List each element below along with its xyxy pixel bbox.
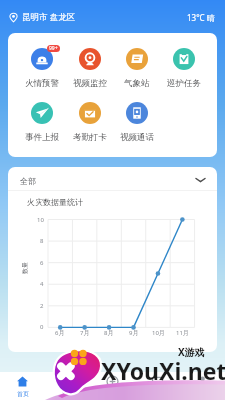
staticText: 9月 bbox=[129, 329, 139, 337]
staticText: 11月 bbox=[176, 329, 189, 337]
button[interactable]: 首页 bbox=[0, 372, 45, 400]
staticText: 考勤打卡 bbox=[73, 132, 107, 143]
other: Location bbox=[9, 13, 18, 22]
staticText: 火情预警 bbox=[25, 78, 59, 89]
staticText: 7月 bbox=[80, 329, 90, 337]
button[interactable]: 巡护 bbox=[45, 372, 90, 400]
button[interactable]: 事件上报 bbox=[18, 102, 66, 143]
staticText: 火灾数据量统计 bbox=[27, 197, 83, 207]
staticText: 昆明市 盘龙区 bbox=[22, 11, 76, 23]
staticText: 0 bbox=[40, 323, 44, 331]
button[interactable]: 视频通话 bbox=[113, 102, 160, 143]
staticText: 4 bbox=[40, 280, 44, 288]
button[interactable]: 我的 bbox=[180, 372, 225, 400]
staticText: 2 bbox=[40, 302, 44, 310]
staticText: 视频监控 bbox=[73, 78, 107, 89]
staticText: 全部 bbox=[20, 176, 36, 186]
button[interactable]: 全部 bbox=[8, 167, 217, 190]
staticText: 数量 bbox=[21, 262, 29, 274]
staticText: 巡护任务 bbox=[167, 78, 201, 89]
staticText: X游戏 bbox=[178, 345, 205, 359]
button[interactable]: 消息 bbox=[135, 372, 180, 400]
staticText: 巡护 bbox=[62, 390, 74, 398]
staticText: 事件上报 bbox=[25, 132, 59, 143]
staticText: 8 bbox=[40, 237, 44, 245]
staticText: XYouXi.net bbox=[101, 355, 225, 386]
staticText: 13°C 晴 bbox=[187, 12, 215, 23]
staticText: 6 bbox=[40, 259, 44, 267]
staticText: 气象站 bbox=[124, 78, 150, 89]
staticText: 99+ bbox=[49, 45, 58, 52]
staticText: 6月 bbox=[55, 329, 65, 337]
button[interactable]: 考勤打卡 bbox=[66, 102, 113, 143]
staticText: 首页 bbox=[17, 390, 29, 398]
button[interactable]: 视频监控 bbox=[66, 48, 113, 89]
staticText: 10月 bbox=[152, 329, 165, 337]
button[interactable]: 上报 bbox=[90, 372, 135, 400]
staticText: 10 bbox=[37, 216, 44, 224]
staticText: 视频通话 bbox=[120, 132, 154, 143]
button[interactable]: 99+ bbox=[18, 48, 66, 89]
staticText: 8月 bbox=[104, 329, 114, 337]
button[interactable]: 气象站 bbox=[113, 48, 160, 89]
button[interactable]: 巡护任务 bbox=[160, 48, 207, 89]
